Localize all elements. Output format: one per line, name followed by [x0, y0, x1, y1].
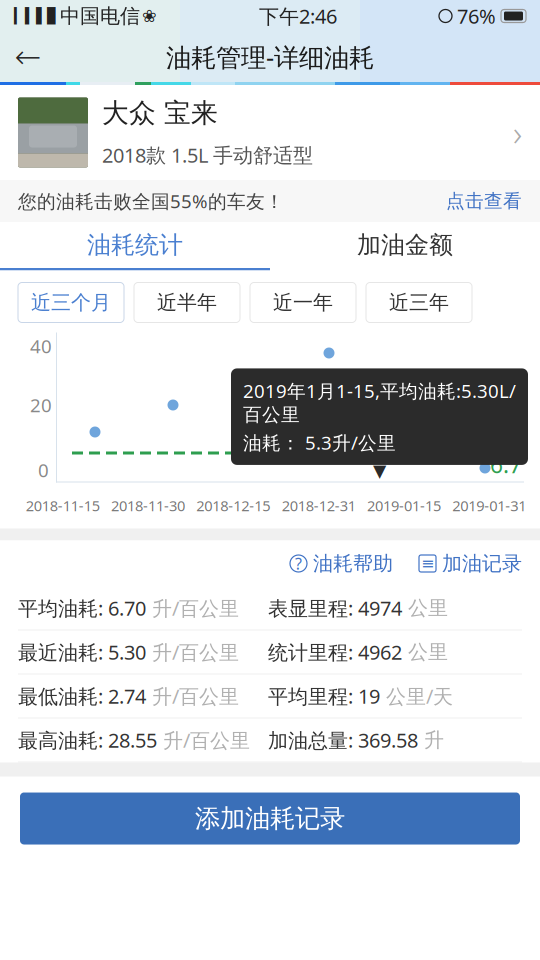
staticText: ▎▍▌▊	[14, 8, 58, 24]
staticText: 2.74	[108, 683, 146, 709]
staticText: 升/百公里	[146, 639, 239, 665]
staticText: 点击查看	[446, 189, 522, 212]
staticText: 加油金额	[357, 230, 453, 260]
staticText: 大众 宝来	[102, 97, 218, 130]
staticText: ≡	[421, 554, 434, 573]
staticText: ▼	[373, 461, 386, 481]
staticText: 公里/天	[380, 683, 453, 709]
staticText: ❀	[142, 6, 157, 26]
button[interactable]: ≡	[419, 551, 522, 576]
staticText: 公里	[402, 596, 448, 620]
button[interactable]: 近三个月	[18, 282, 124, 322]
staticText: 最高油耗:	[18, 727, 108, 753]
button[interactable]: 大众 宝来	[0, 85, 540, 180]
staticText: 最近油耗:	[18, 639, 108, 665]
staticText: 平均油耗:	[18, 595, 108, 621]
staticText: 19	[358, 683, 380, 709]
staticText: 0	[38, 458, 49, 482]
staticText: 油耗： 5.3升/公里	[243, 430, 396, 455]
staticText: 2019-01-15	[367, 496, 441, 515]
staticText: 升/百公里	[157, 727, 250, 753]
staticText: 油耗帮助	[313, 551, 393, 576]
staticText: 添加油耗记录	[195, 803, 345, 834]
button[interactable]: ?	[290, 551, 393, 576]
staticText: 下午2:46	[259, 3, 337, 29]
staticText: 近一年	[273, 290, 333, 315]
button[interactable]: 加油金额	[270, 222, 540, 268]
staticText: ←	[14, 39, 41, 75]
button[interactable]: 添加油耗记录	[20, 792, 520, 844]
staticText: 加油记录	[442, 551, 522, 576]
staticText: 2018-11-15	[26, 496, 100, 515]
staticText: 近三个月	[31, 290, 111, 315]
staticText: 表显里程:	[268, 595, 358, 621]
staticText: 中国电信	[60, 4, 140, 28]
button[interactable]: 近三年	[366, 282, 472, 322]
button[interactable]: 油耗统计	[0, 222, 270, 268]
button[interactable]: 近半年	[134, 282, 240, 322]
staticText: 加油总量:	[268, 727, 358, 753]
staticText: 升	[418, 728, 444, 752]
staticText: 最低油耗:	[18, 683, 108, 709]
staticText: 近半年	[157, 290, 217, 315]
staticText: 2018-12-15	[196, 496, 270, 515]
staticText: 油耗管理-详细油耗	[166, 40, 374, 74]
staticText: 油耗统计	[87, 230, 183, 260]
staticText: 2019-01-31	[452, 496, 526, 515]
staticText: 升/百公里	[146, 595, 239, 621]
staticText: 369.58	[358, 727, 418, 753]
staticText: 76%	[457, 3, 496, 29]
staticText: 2018-12-31	[282, 496, 356, 515]
staticText: 平均里程:	[268, 683, 358, 709]
staticText: 4974	[358, 595, 402, 621]
staticText: 您的油耗击败全国55%的车友！	[18, 189, 284, 213]
staticText: 6.70	[108, 595, 146, 621]
staticText: 6.7	[490, 449, 522, 479]
staticText: 2018款 1.5L 手动舒适型	[102, 142, 313, 168]
staticText: ›	[513, 109, 522, 155]
staticText: 4962	[358, 639, 402, 665]
staticText: 2019年1月1-15,平均油耗:5.30L/百公里	[243, 378, 516, 426]
staticText: 近三年	[389, 290, 449, 315]
staticText: 2018-11-30	[111, 496, 185, 515]
staticText: 5.30	[108, 639, 146, 665]
staticText: 统计里程:	[268, 639, 358, 665]
button[interactable]: 返回	[0, 32, 56, 82]
staticText: 公里	[402, 640, 448, 664]
staticText: 升/百公里	[146, 683, 239, 709]
button[interactable]: 近一年	[250, 282, 356, 322]
staticText: 28.55	[108, 727, 157, 753]
button[interactable]: 您的油耗击败全国55%的车友！	[0, 180, 540, 222]
staticText: 20	[30, 392, 52, 417]
staticText: ?	[295, 553, 302, 574]
staticText: 40	[30, 333, 52, 358]
